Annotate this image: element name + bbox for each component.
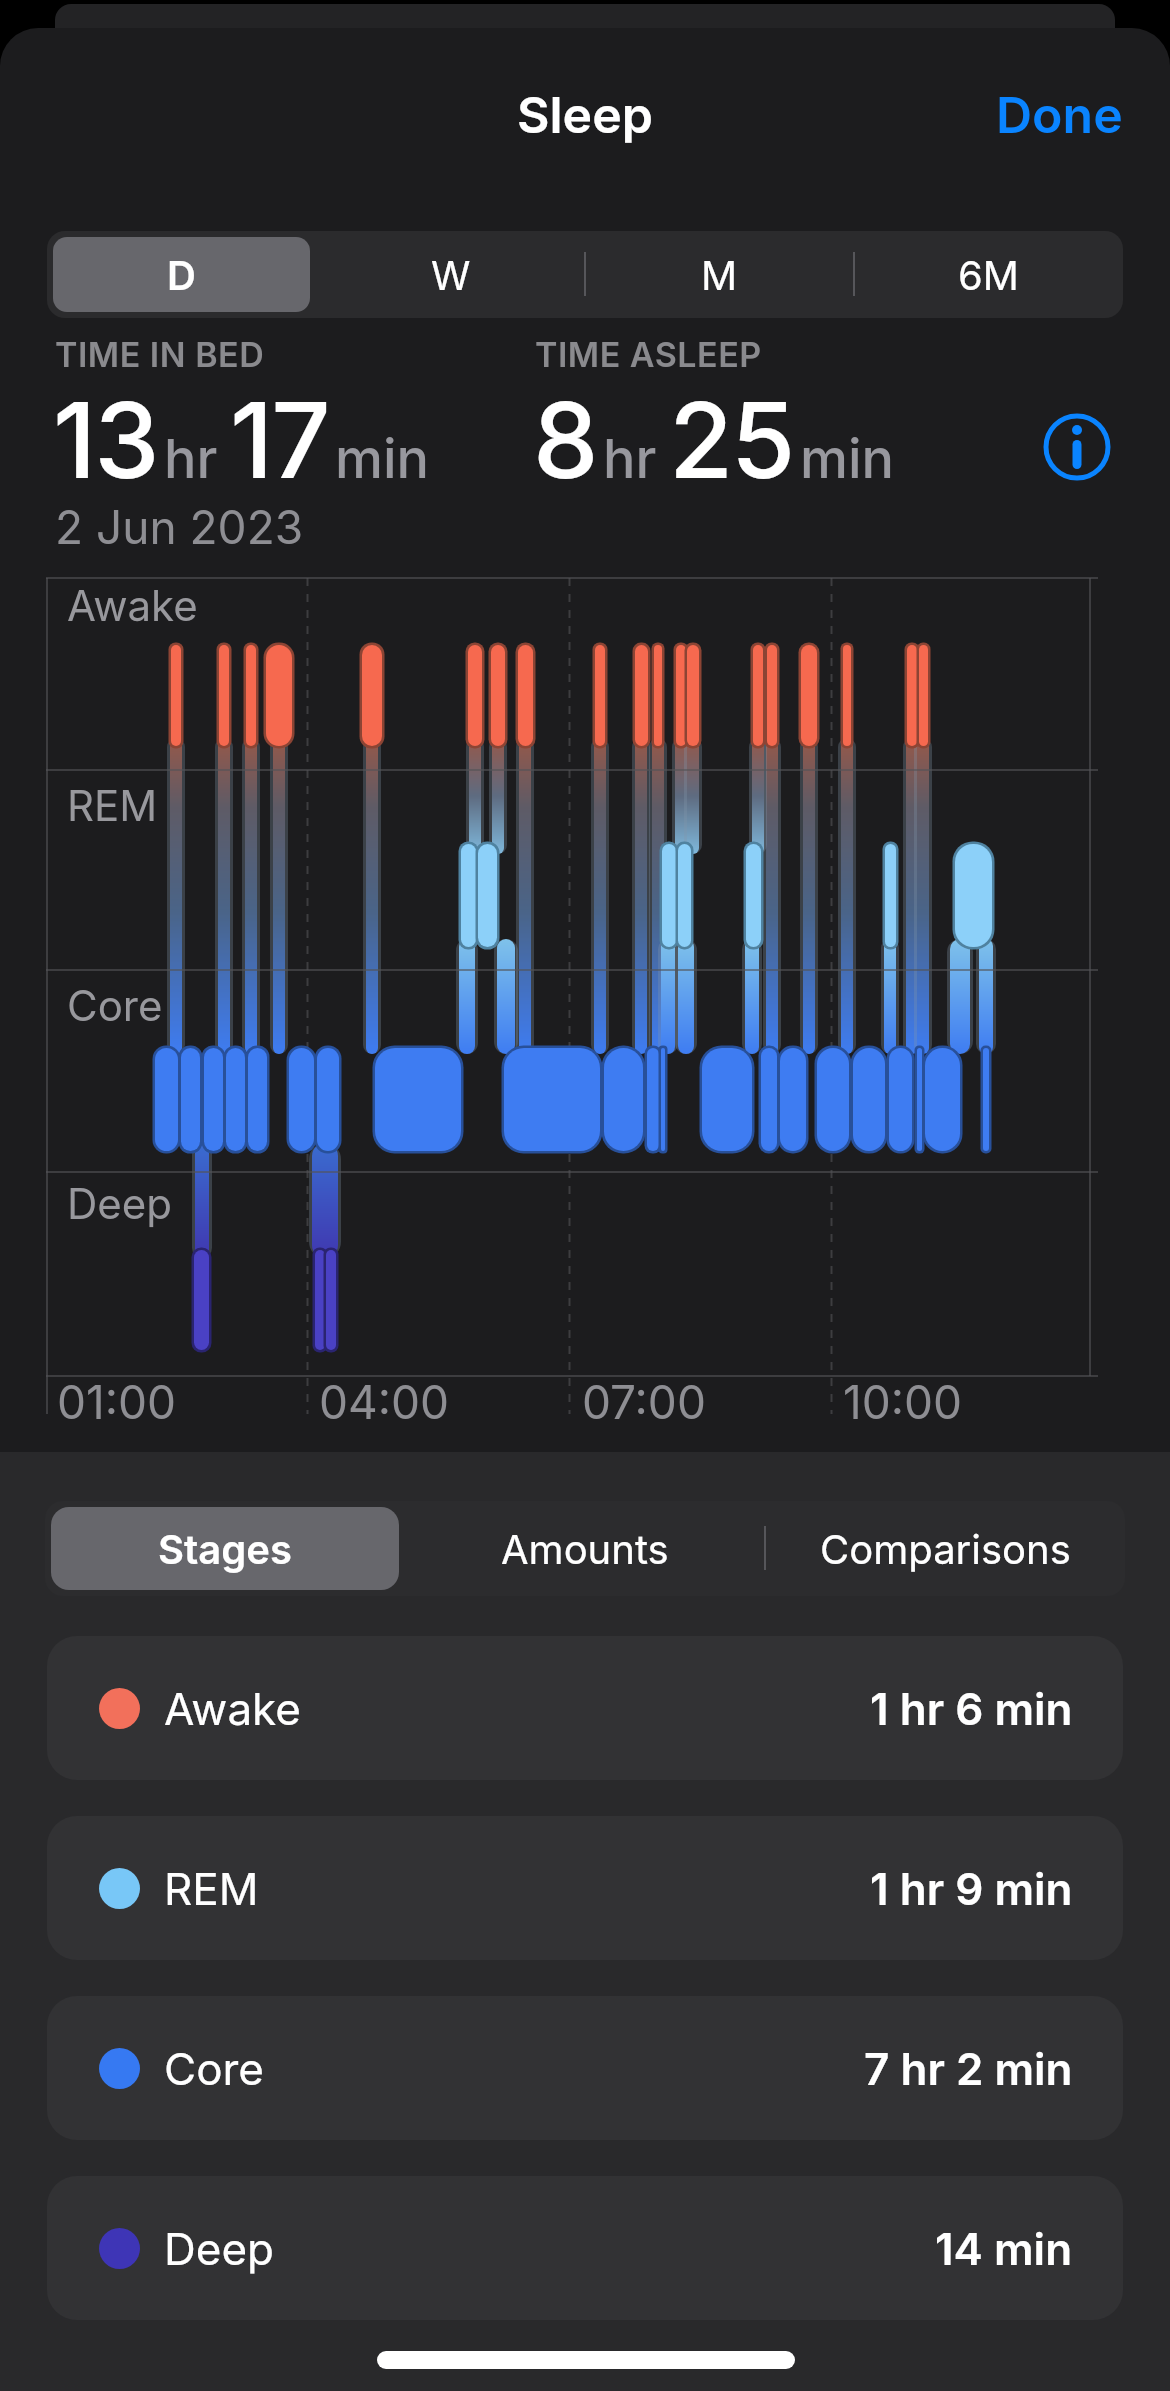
- staticText: 04:00: [319, 1374, 450, 1430]
- staticText: min: [800, 426, 895, 491]
- staticText: REM: [67, 780, 158, 831]
- staticText: min: [335, 426, 430, 491]
- staticText: Amounts: [501, 1525, 669, 1573]
- button[interactable]: Amounts: [405, 1501, 765, 1596]
- staticText: 17: [230, 377, 329, 503]
- staticText: TIME IN BED: [55, 334, 265, 375]
- button[interactable]: Core: [47, 1996, 1123, 2140]
- button[interactable]: Comparisons: [765, 1501, 1125, 1596]
- button[interactable]: D: [47, 231, 316, 318]
- staticText: Awake: [164, 1682, 301, 1735]
- staticText: 07:00: [582, 1374, 706, 1430]
- staticText: REM: [164, 1862, 259, 1915]
- staticText: M: [701, 251, 738, 299]
- button[interactable]: Deep: [47, 2176, 1123, 2320]
- button[interactable]: W: [316, 231, 585, 318]
- staticText: 7 hr 2 min: [864, 2042, 1073, 2095]
- button[interactable]: 6M: [854, 231, 1123, 318]
- button[interactable]: Stages: [45, 1501, 405, 1596]
- staticText: Core: [164, 2042, 265, 2095]
- staticText: W: [431, 251, 471, 299]
- staticText: 1 hr 9 min: [870, 1862, 1073, 1915]
- staticText: 6M: [958, 251, 1019, 299]
- staticText: hr: [603, 426, 657, 491]
- staticText: 10:00: [843, 1374, 963, 1430]
- staticText: 2 Jun 2023: [55, 499, 304, 555]
- staticText: Stages: [158, 1525, 292, 1573]
- staticText: hr: [164, 426, 218, 491]
- button[interactable]: Awake: [47, 1636, 1123, 1780]
- staticText: D: [167, 251, 196, 299]
- staticText: Awake: [67, 580, 198, 631]
- staticText: 8: [533, 377, 597, 503]
- staticText: 25: [669, 377, 794, 503]
- button[interactable]: Done: [996, 85, 1123, 145]
- button[interactable]: [1040, 410, 1114, 484]
- staticText: Deep: [67, 1178, 172, 1229]
- staticText: TIME ASLEEP: [535, 334, 762, 375]
- staticText: Core: [67, 980, 163, 1031]
- staticText: 14 min: [935, 2222, 1073, 2275]
- staticText: 01:00: [57, 1374, 177, 1430]
- button[interactable]: M: [585, 231, 854, 318]
- staticText: 13: [53, 377, 158, 503]
- staticText: Sleep: [517, 85, 653, 145]
- staticText: Comparisons: [820, 1525, 1071, 1573]
- button[interactable]: REM: [47, 1816, 1123, 1960]
- staticText: 1 hr 6 min: [870, 1682, 1073, 1735]
- staticText: Deep: [164, 2222, 274, 2275]
